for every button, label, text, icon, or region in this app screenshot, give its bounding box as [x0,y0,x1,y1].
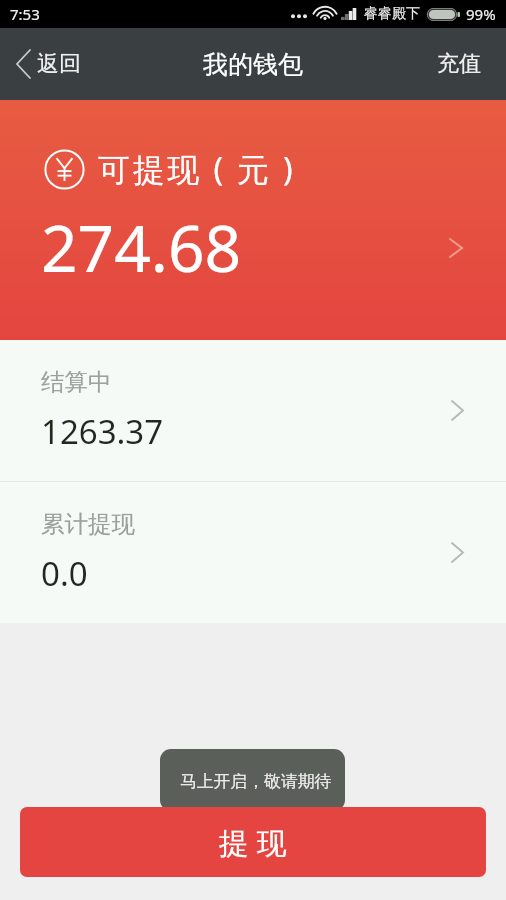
button[interactable]: 结算中 [0,340,506,481]
staticText: 返回 [37,50,81,78]
button[interactable]: 可提现 ( 元 ) [0,100,506,340]
button[interactable]: 返回 [0,28,99,100]
staticText: 99% [466,4,496,24]
other: Total withdrawn [451,542,464,563]
staticText: 可提现 ( 元 ) [98,147,296,191]
staticText: 274.68 [41,204,242,291]
other: Withdrawable detail [449,238,463,258]
other: Settlement in progress [451,400,464,421]
staticText: 0.0 [41,551,88,596]
staticText: 累计提现 [41,509,135,539]
staticText: 结算中 [41,367,112,397]
staticText: 睿睿殿下 [364,5,420,23]
staticText: 1263.37 [41,409,164,454]
staticText: 提 现 [219,822,287,863]
button[interactable]: 提 现 [20,807,486,877]
staticText: 我的钱包 [203,49,303,80]
button[interactable]: 充值 [412,32,506,96]
staticText: 7:53 [10,4,40,24]
staticText: 充值 [437,50,481,78]
staticText: 马上开启，敬请期待 [180,771,332,792]
button[interactable]: 累计提现 [0,482,506,623]
